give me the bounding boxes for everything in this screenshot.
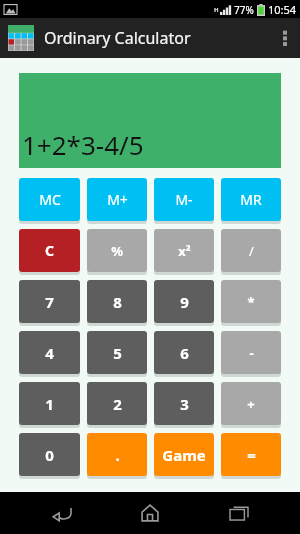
button[interactable]: Back: [35, 492, 89, 534]
staticText: Ordinary Calculator: [44, 27, 191, 49]
button[interactable]: 0: [19, 433, 80, 476]
staticText: %: [111, 242, 123, 260]
staticText: =: [247, 445, 256, 465]
button[interactable]: 6: [154, 331, 214, 374]
button[interactable]: *: [221, 280, 281, 323]
staticText: 7: [45, 292, 54, 312]
staticText: MR: [240, 190, 262, 209]
staticText: -: [249, 344, 254, 362]
button[interactable]: MR: [221, 178, 281, 221]
button[interactable]: Home: [123, 492, 177, 534]
button[interactable]: 7: [19, 280, 80, 323]
button[interactable]: 2: [87, 382, 147, 425]
button[interactable]: More options: [270, 18, 300, 58]
staticText: 9: [180, 292, 189, 312]
staticText: H: [214, 6, 219, 14]
staticText: x²: [178, 242, 191, 260]
button[interactable]: 5: [87, 331, 147, 374]
button[interactable]: 3: [154, 382, 214, 425]
button[interactable]: C: [19, 229, 80, 272]
staticText: M+: [107, 190, 128, 209]
staticText: Game: [162, 445, 206, 465]
button[interactable]: %: [87, 229, 147, 272]
button[interactable]: M+: [87, 178, 147, 221]
button[interactable]: -: [221, 331, 281, 374]
button[interactable]: 8: [87, 280, 147, 323]
staticText: 3: [180, 394, 189, 414]
staticText: *: [247, 293, 255, 311]
button[interactable]: Game: [154, 433, 214, 476]
staticText: 0: [45, 445, 54, 465]
button[interactable]: Recent apps: [212, 492, 266, 534]
button[interactable]: =: [221, 433, 281, 476]
staticText: 1+2*3-4/5: [22, 127, 144, 162]
staticText: 77%: [234, 3, 254, 17]
staticText: MC: [39, 190, 61, 209]
staticText: C: [45, 241, 54, 260]
button[interactable]: 1+2*3-4/5: [19, 73, 281, 168]
staticText: 6: [180, 343, 189, 363]
button[interactable]: /: [221, 229, 281, 272]
staticText: 1: [45, 394, 54, 414]
staticText: 8: [113, 292, 122, 312]
button[interactable]: MC: [19, 178, 80, 221]
staticText: M-: [175, 190, 193, 209]
button[interactable]: 4: [19, 331, 80, 374]
staticText: 5: [113, 343, 122, 363]
staticText: 2: [113, 394, 122, 414]
button[interactable]: x²: [154, 229, 214, 272]
staticText: /: [249, 242, 254, 260]
button[interactable]: +: [221, 382, 281, 425]
staticText: 4: [45, 343, 54, 363]
button[interactable]: 1: [19, 382, 80, 425]
button[interactable]: 9: [154, 280, 214, 323]
staticText: +: [247, 395, 255, 413]
button[interactable]: M-: [154, 178, 214, 221]
staticText: 10:54: [268, 2, 297, 17]
staticText: .: [115, 445, 120, 465]
button[interactable]: .: [87, 433, 147, 476]
